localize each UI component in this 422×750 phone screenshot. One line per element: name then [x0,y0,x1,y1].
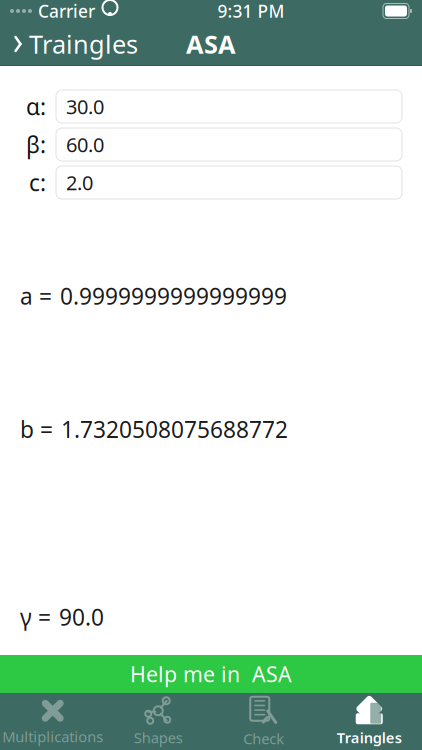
staticText: Shapes [134,728,183,747]
staticText: a = [20,281,52,311]
staticText: 9:31 PM [217,0,284,22]
staticText: Carrier [38,0,95,22]
staticText: b = [20,414,53,444]
staticText: Multiplications [2,727,103,746]
staticText: ASA [186,27,236,61]
staticText: 1.7320508075688772 [61,414,288,444]
button[interactable]: Shapes [105,695,211,747]
staticText: Check [243,729,284,748]
staticText: 90.0 [59,602,104,632]
button[interactable]: 60.0 [56,128,402,161]
button[interactable]: 2.0 [56,166,402,199]
staticText: 0.9999999999999999 [60,281,287,311]
button[interactable]: Traingles [316,695,422,747]
staticText: Help me in ASA [130,660,292,688]
button[interactable]: Check [211,695,316,747]
staticText: 2.0 [66,169,93,196]
staticText: α: [26,91,46,121]
staticText: γ = [20,602,51,632]
staticText: Traingles [29,27,138,61]
staticText: 60.0 [66,131,104,158]
staticText: c: [29,167,46,197]
staticText: Traingles [337,728,402,747]
staticText: β: [26,129,46,159]
button[interactable]: 30.0 [56,90,402,123]
staticText: 30.0 [66,93,104,120]
button[interactable]: Help me in ASA [0,655,422,693]
button[interactable]: Traingles [0,22,150,66]
button[interactable]: Multiplications [0,695,105,747]
